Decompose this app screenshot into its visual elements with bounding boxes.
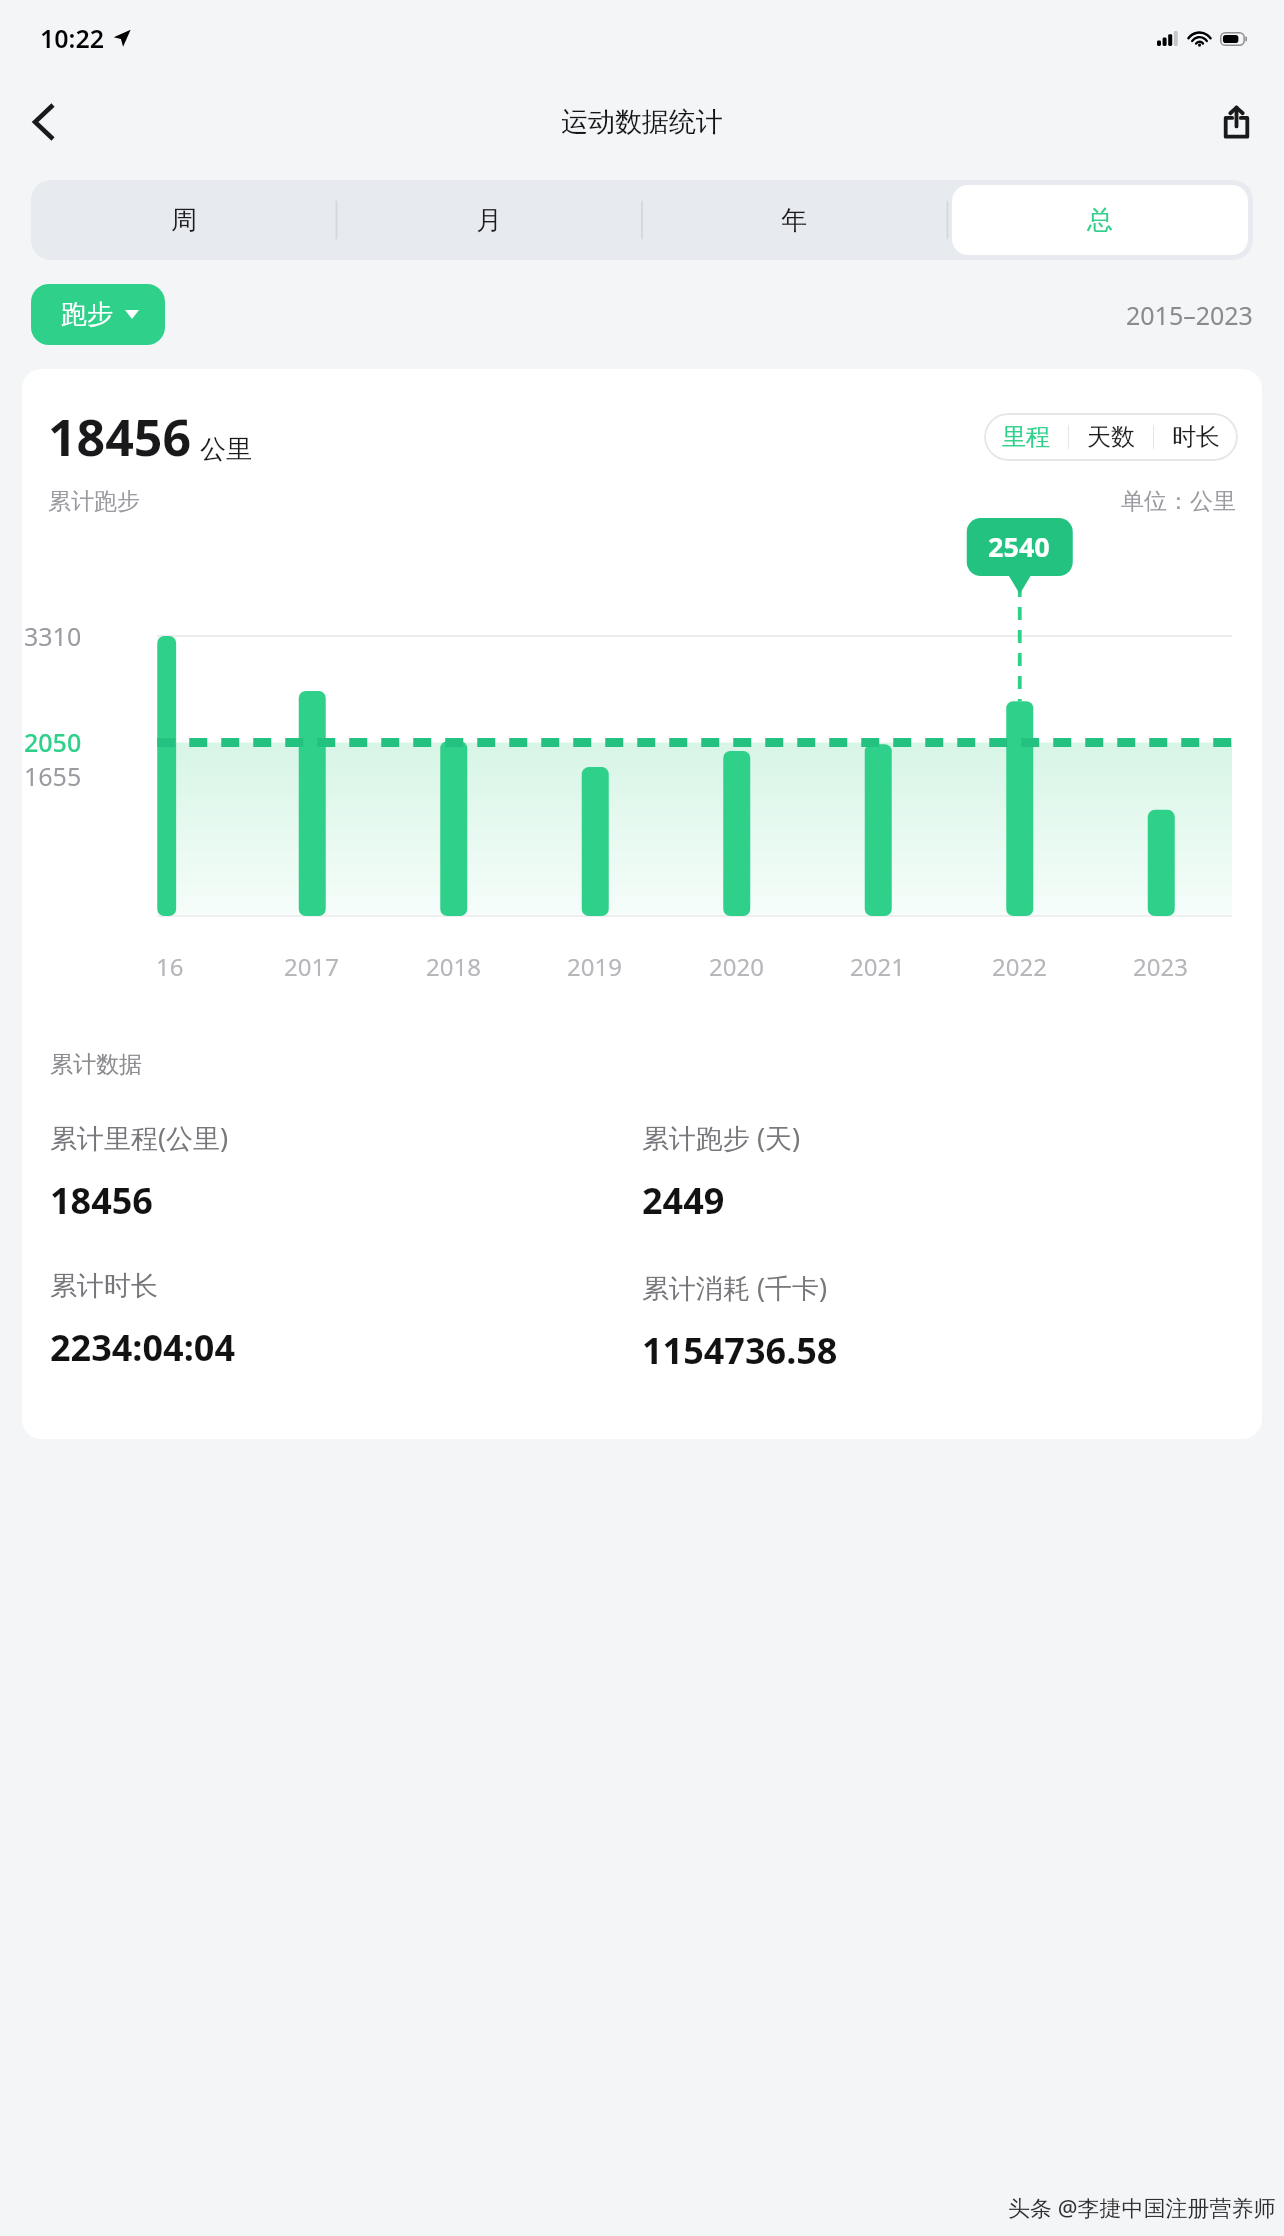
button[interactable]: 时长 [1154,414,1238,460]
staticText: 周 [171,204,197,237]
button[interactable]: 天数 [1069,414,1153,460]
button[interactable]: 周 [36,185,331,255]
staticText: 2017 [284,950,339,983]
staticText: 2234:04:04 [50,1323,235,1372]
staticText: 年 [781,204,807,237]
staticText: 18456 [48,403,191,471]
staticText: 1655 [24,759,82,793]
staticText: 2023 [1133,950,1188,983]
button[interactable]: 年 [646,185,942,255]
staticText: 天数 [1087,422,1135,452]
staticText: 2018 [426,950,481,983]
button[interactable]: 跑步 [31,284,165,345]
staticText: 单位：公里 [1121,487,1236,516]
staticText: 2021 [850,950,905,983]
staticText: 2019 [567,950,622,983]
staticText: 累计数据 [50,1050,142,1079]
button[interactable]: Back [12,90,76,154]
staticText: 累计跑步 (天) [642,1119,801,1156]
staticText: 2015–2023 [1126,298,1253,332]
staticText: 2050 [24,725,82,759]
staticText: 2449 [642,1176,725,1225]
staticText: 公里 [200,433,252,466]
staticText: 18456 [50,1176,153,1225]
staticText: 月 [476,204,502,237]
button[interactable]: 总 [952,185,1248,255]
staticText: 累计跑步 [48,487,140,516]
staticText: 跑步 [61,298,113,331]
staticText: 运动数据统计 [561,105,723,139]
staticText: 头条 @李捷中国注册营养师 [1008,2192,1276,2222]
staticText: 10:22 [40,21,105,55]
staticText: 2540 [988,528,1050,565]
staticText: 累计里程(公里) [50,1119,229,1156]
button[interactable]: 月 [341,185,636,255]
staticText: 总 [1087,204,1113,237]
staticText: 3310 [24,619,82,653]
staticText: 累计消耗 (千卡) [642,1269,828,1306]
staticText: 16 [156,950,184,983]
staticText: 时长 [1172,422,1220,452]
staticText: 2020 [709,950,764,983]
button[interactable]: 里程 [984,414,1068,460]
staticText: 2022 [992,950,1047,983]
staticText: 1154736.58 [642,1326,838,1375]
button[interactable]: Share [1204,90,1268,154]
staticText: 累计时长 [50,1269,158,1303]
staticText: 里程 [1002,422,1050,452]
